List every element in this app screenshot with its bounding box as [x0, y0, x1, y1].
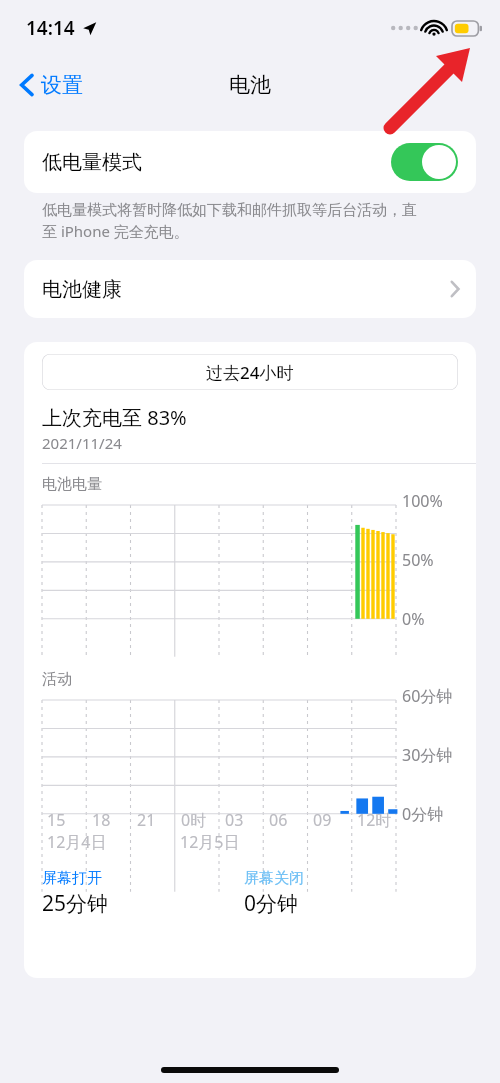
staticText: 12时 [357, 809, 392, 831]
staticText: 21 [137, 809, 156, 831]
staticText: 50% [402, 549, 434, 571]
staticText: 电池 [229, 72, 271, 98]
staticText: 12月4日 [47, 831, 107, 853]
button[interactable]: 低电量模式 [24, 131, 476, 193]
staticText: 0分钟 [244, 889, 299, 918]
staticText: 12月5日 [180, 831, 240, 853]
staticText: 屏幕打开 [42, 869, 102, 888]
staticText: 03 [225, 809, 244, 831]
staticText: 活动 [42, 670, 72, 689]
staticText: 15 [47, 809, 66, 831]
staticText: 电池健康 [42, 277, 122, 302]
staticText: 18 [92, 809, 111, 831]
staticText: 上次充电至 83% [42, 404, 187, 431]
staticText: 屏幕关闭 [244, 869, 304, 888]
staticText: 0% [402, 608, 425, 630]
staticText: 100% [402, 490, 443, 512]
staticText: 电池电量 [42, 475, 102, 494]
staticText: 设置 [41, 72, 83, 98]
staticText: 14:14 [26, 15, 75, 41]
staticText: 60分钟 [402, 685, 453, 707]
button[interactable]: 设置 [14, 66, 89, 104]
button[interactable]: 过去24小时 [42, 354, 458, 390]
staticText: 0分钟 [402, 803, 444, 825]
staticText: 低电量模式 [42, 150, 142, 175]
staticText: 低电量模式将暂时降低如下载和邮件抓取等后台活动，直 至 iPhone 完全充电。 [42, 201, 417, 242]
staticText: 25分钟 [42, 889, 109, 918]
staticText: 09 [313, 809, 332, 831]
button[interactable]: 低电量模式开关 [391, 143, 458, 181]
staticText: 30分钟 [402, 744, 453, 766]
staticText: 过去24小时 [206, 361, 294, 384]
staticText: 2021/11/24 [42, 433, 122, 453]
staticText: 0时 [181, 809, 207, 831]
staticText: 06 [269, 809, 288, 831]
button[interactable]: 电池健康 [24, 260, 476, 318]
